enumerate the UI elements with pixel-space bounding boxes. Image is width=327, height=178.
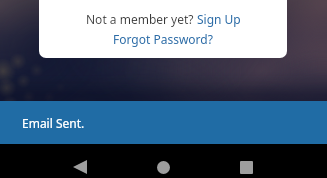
button[interactable]: Email Sent. bbox=[0, 101, 327, 144]
button[interactable]: Home bbox=[147, 151, 179, 178]
button[interactable]: Forgot Password? bbox=[113, 31, 213, 47]
button[interactable]: Recents bbox=[230, 151, 262, 178]
button[interactable]: Sign Up bbox=[197, 11, 241, 27]
staticText: Forgot Password? bbox=[113, 31, 213, 47]
staticText: Email Sent. bbox=[22, 115, 85, 131]
staticText: Sign Up bbox=[197, 11, 241, 27]
button[interactable]: Back bbox=[64, 151, 96, 178]
staticText: Not a member yet? bbox=[86, 11, 197, 27]
